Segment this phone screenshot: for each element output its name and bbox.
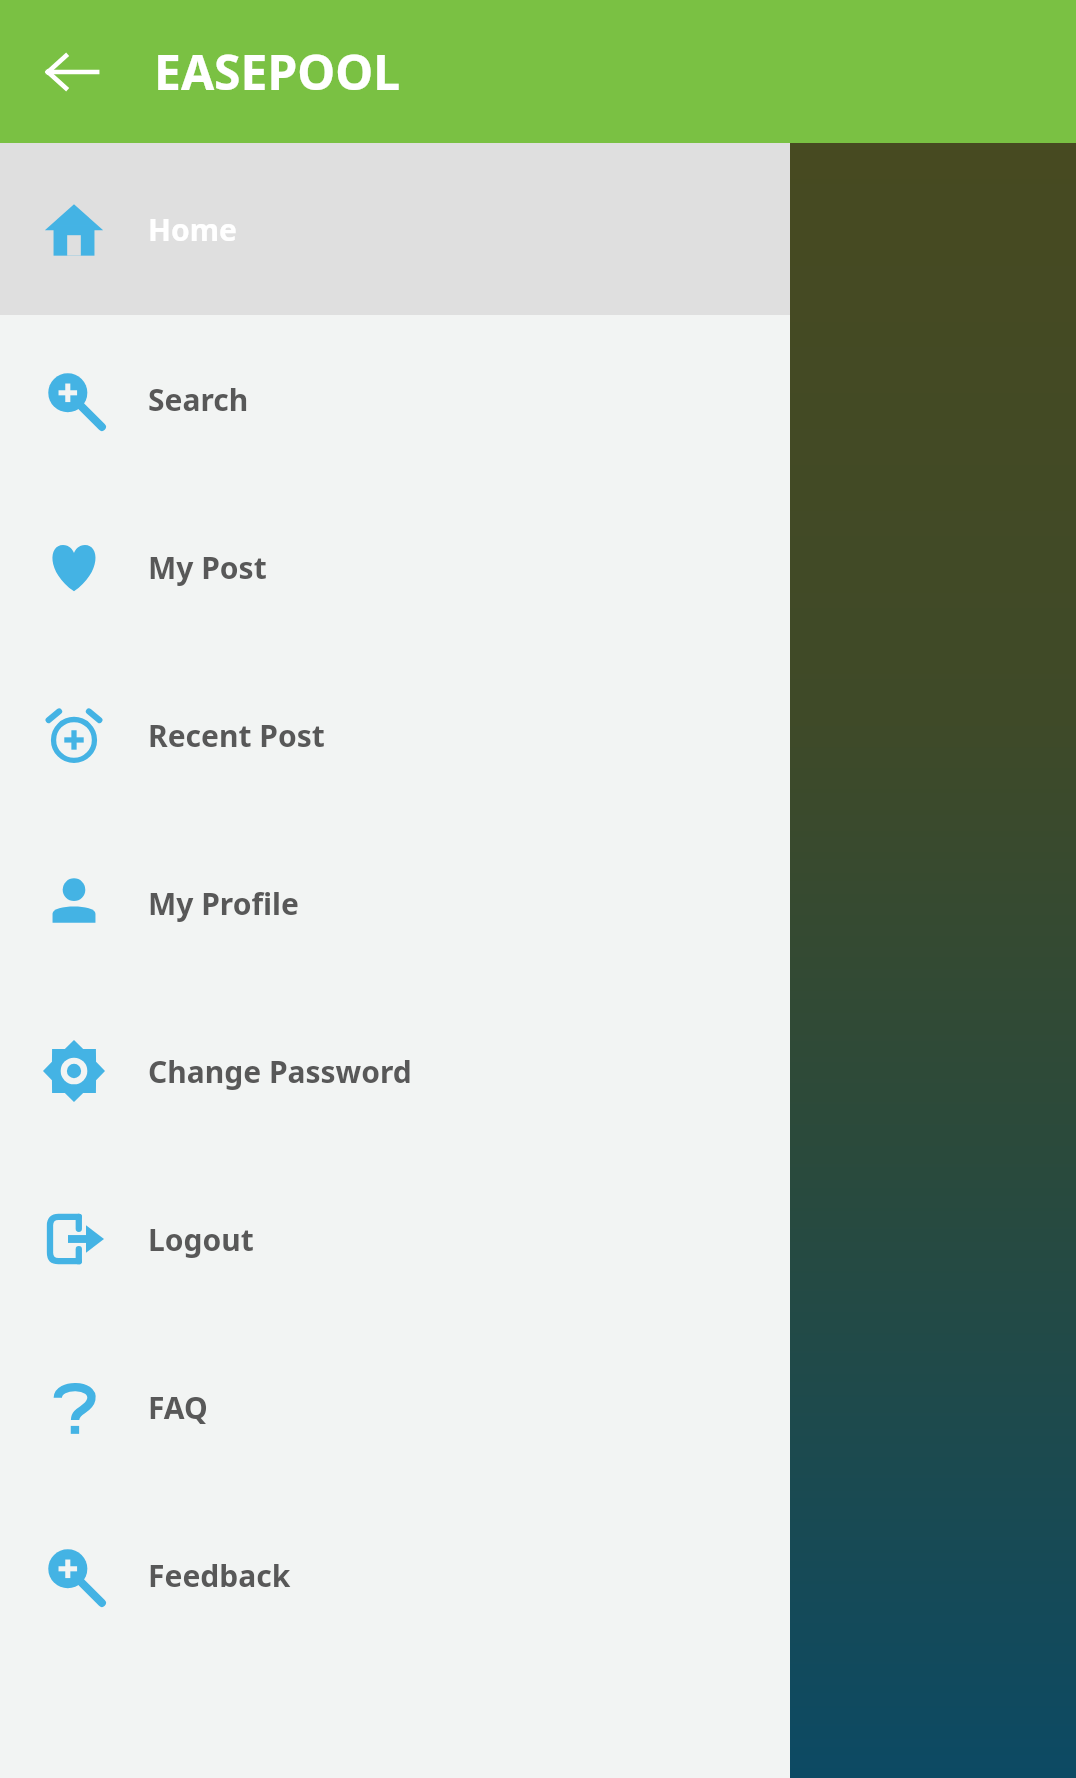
button[interactable]: Back	[34, 34, 110, 110]
staticText: Logout	[148, 1219, 254, 1260]
staticText: FAQ	[148, 1387, 208, 1428]
staticText: Feedback	[148, 1555, 291, 1596]
button[interactable]: Logout	[0, 1155, 790, 1323]
button[interactable]: My Post	[0, 483, 790, 651]
button[interactable]: FAQ	[0, 1323, 790, 1491]
button[interactable]: Search	[0, 315, 790, 483]
staticText: Search	[148, 379, 249, 420]
staticText: Home	[148, 209, 237, 250]
staticText: EASEPOOL	[154, 39, 401, 104]
button[interactable]: Feedback	[0, 1491, 790, 1659]
button[interactable]: Change Password	[0, 987, 790, 1155]
button[interactable]: My Profile	[0, 819, 790, 987]
staticText: My Post	[148, 547, 267, 588]
staticText: Change Password	[148, 1051, 412, 1092]
button[interactable]: Recent Post	[0, 651, 790, 819]
staticText: Recent Post	[148, 715, 325, 756]
staticText: My Profile	[148, 883, 299, 924]
button[interactable]: Home	[0, 143, 790, 315]
